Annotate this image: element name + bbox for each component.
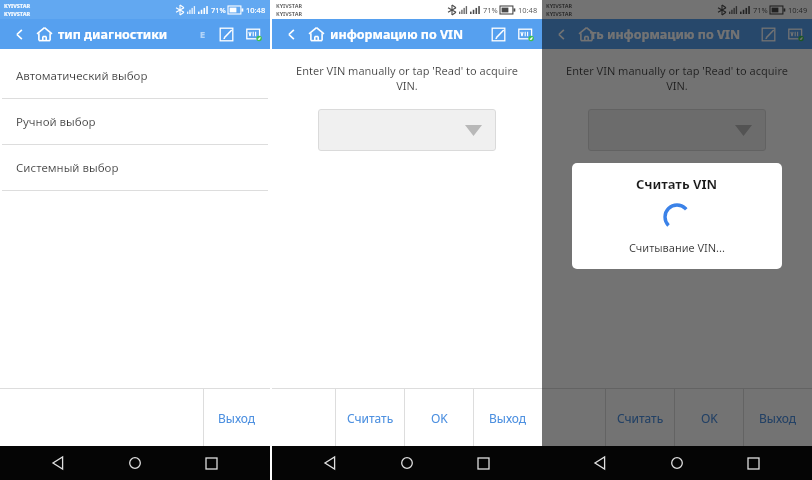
button[interactable]: Home	[394, 450, 420, 476]
button[interactable]: Ручной выбор	[0, 99, 270, 145]
button[interactable]: Back	[588, 450, 614, 476]
staticText: Выход	[218, 410, 256, 426]
button[interactable]: OK	[405, 389, 473, 446]
staticText: E	[200, 28, 206, 40]
button[interactable]: VCI connection	[785, 23, 807, 45]
staticText: KYIVSTAR	[546, 2, 573, 9]
staticText: KYIVSTAR	[276, 2, 303, 9]
staticText: информацию по VIN	[330, 26, 464, 43]
staticText: 71%	[483, 5, 498, 15]
staticText: Выход	[489, 410, 527, 426]
button[interactable]: Home	[574, 22, 598, 46]
staticText: Считать	[617, 410, 664, 426]
button[interactable]: Recents	[198, 450, 224, 476]
button[interactable]: Recents	[470, 450, 496, 476]
staticText: 10:49	[788, 5, 808, 15]
button[interactable]: Home	[32, 22, 56, 46]
button[interactable]: VIN dropdown	[588, 109, 766, 151]
staticText: ть информацию по VIN	[590, 26, 741, 43]
button[interactable]: Edit notes	[215, 23, 237, 45]
button[interactable]: E	[195, 26, 211, 42]
button[interactable]: Автоматический выбор	[0, 53, 270, 99]
button[interactable]: Back	[550, 23, 572, 45]
button[interactable]: Выход	[204, 389, 270, 446]
staticText: Автоматический выбор	[16, 68, 148, 84]
staticText: Считать	[347, 410, 394, 426]
staticText: Считывание VIN...	[629, 240, 725, 255]
staticText: Ручной выбор	[16, 114, 96, 130]
button[interactable]: Edit notes	[487, 23, 509, 45]
button[interactable]: Back	[46, 450, 72, 476]
staticText: Считать VIN	[636, 175, 718, 193]
button[interactable]: Back	[280, 23, 302, 45]
button[interactable]: Back	[8, 23, 30, 45]
staticText: OK	[431, 410, 448, 426]
button[interactable]: Edit notes	[757, 23, 779, 45]
staticText: 10:48	[246, 5, 266, 15]
staticText: KYIVSTAR	[4, 2, 31, 9]
staticText: Enter VIN manually or tap 'Read' to acqu…	[560, 63, 794, 93]
staticText: OK	[701, 410, 718, 426]
staticText: KYIVSTAR	[546, 10, 573, 17]
button[interactable]: Home	[304, 22, 328, 46]
staticText: 71%	[211, 5, 226, 15]
button[interactable]: Считать	[336, 389, 404, 446]
button[interactable]: Считать	[606, 389, 674, 446]
button[interactable]: VCI connection	[515, 23, 537, 45]
button[interactable]: VCI connection	[243, 23, 265, 45]
button[interactable]: Выход	[744, 389, 812, 446]
staticText: тип диагностики	[58, 26, 168, 43]
staticText: 10:48	[518, 5, 538, 15]
staticText: KYIVSTAR	[276, 10, 303, 17]
staticText: Системный выбор	[16, 160, 119, 176]
button[interactable]: VIN dropdown	[318, 109, 496, 151]
staticText: Выход	[759, 410, 797, 426]
staticText: KYIVSTAR	[4, 10, 31, 17]
button[interactable]: Home	[664, 450, 690, 476]
staticText: Enter VIN manually or tap 'Read' to acqu…	[290, 63, 524, 93]
button[interactable]: Системный выбор	[0, 145, 270, 191]
button[interactable]: Выход	[474, 389, 542, 446]
button[interactable]: Recents	[740, 450, 766, 476]
staticText: 71%	[753, 5, 768, 15]
button[interactable]: OK	[675, 389, 743, 446]
button[interactable]: Home	[122, 450, 148, 476]
button[interactable]: Back	[318, 450, 344, 476]
